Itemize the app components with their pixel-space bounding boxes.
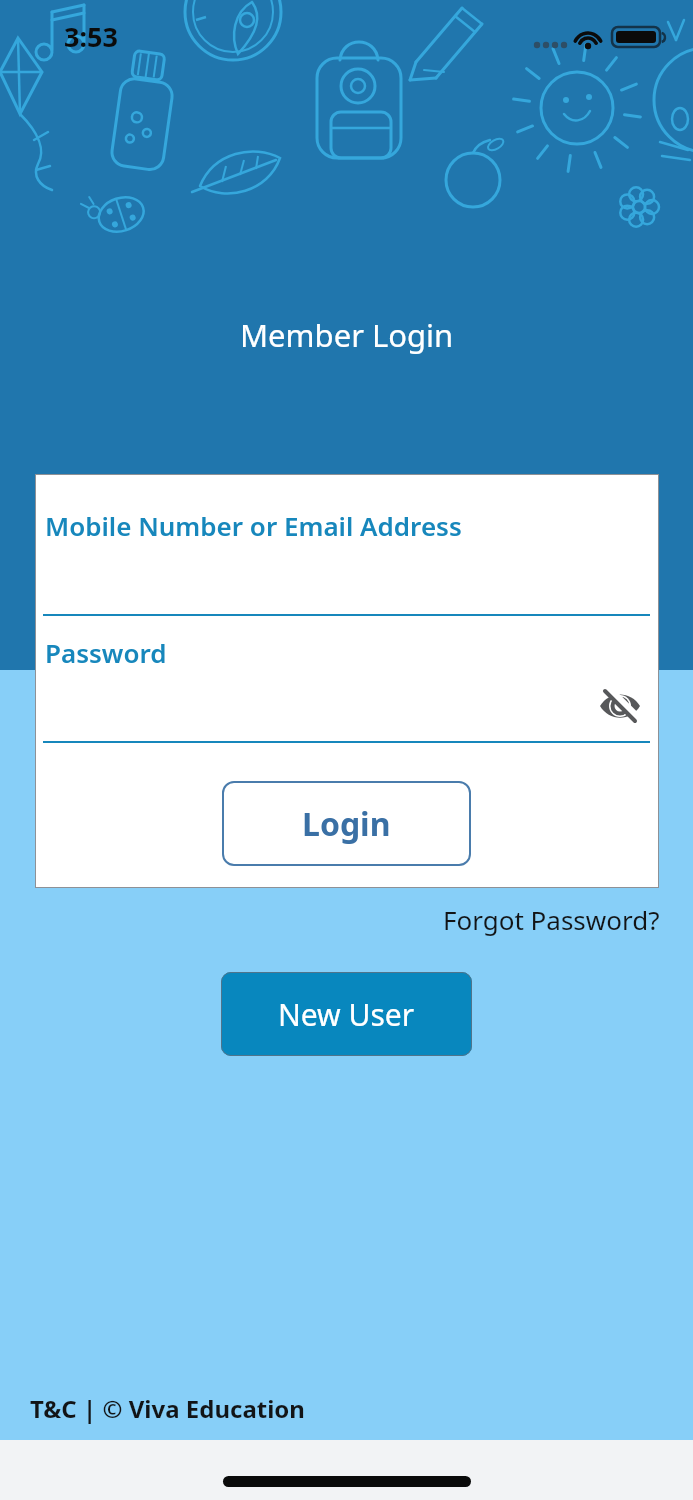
button[interactable]: Forgot Password? [420, 898, 660, 940]
staticText: New User [278, 994, 415, 1035]
button[interactable] [598, 684, 642, 728]
button[interactable]: Login [222, 781, 471, 866]
staticText: Password [45, 635, 167, 670]
staticText: Forgot Password? [443, 902, 660, 937]
staticText: Member Login [240, 314, 454, 356]
button[interactable]: New User [221, 972, 472, 1056]
staticText: Mobile Number or Email Address [45, 508, 462, 543]
button[interactable]: T&C | © Viva Education [30, 1390, 305, 1426]
staticText: 3:53 [64, 18, 118, 55]
staticText: T&C | © Viva Education [30, 1392, 305, 1425]
staticText: Login [302, 802, 391, 846]
